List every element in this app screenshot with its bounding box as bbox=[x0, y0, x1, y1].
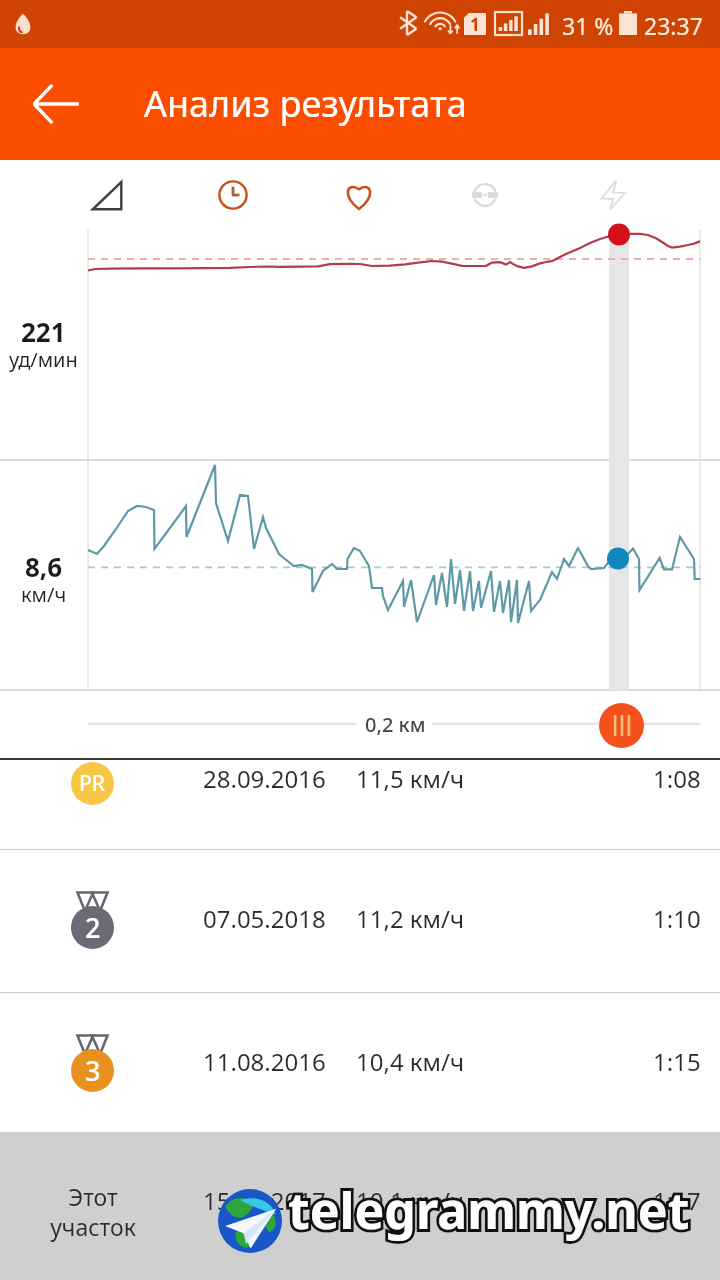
staticText: 221 bbox=[21, 314, 66, 349]
button[interactable]: Heart rate bbox=[296, 160, 422, 230]
staticText: 23:37 bbox=[644, 10, 703, 41]
staticText: Анализ результата bbox=[144, 79, 467, 128]
staticText: 11,5 км/ч bbox=[356, 762, 465, 795]
button[interactable]: Этот участок bbox=[23, 1181, 163, 1251]
staticText: 11,2 км/ч bbox=[356, 902, 465, 935]
staticText: 07.05.2018 bbox=[203, 902, 326, 935]
button[interactable]: Drag handle bbox=[599, 703, 644, 748]
staticText: telegrammy.net bbox=[288, 1176, 690, 1244]
button[interactable]: Elevation profile bbox=[44, 160, 170, 230]
staticText: 31 % bbox=[562, 10, 614, 41]
button[interactable]: Time bbox=[170, 160, 296, 230]
staticText: уд/мин bbox=[9, 346, 78, 373]
button[interactable]: 2 bbox=[0, 849, 720, 992]
staticText: 1:08 bbox=[653, 762, 701, 795]
staticText: км/ч bbox=[21, 581, 67, 608]
staticText: 1:17 bbox=[653, 1184, 701, 1217]
staticText: 10,4 км/ч bbox=[356, 1045, 465, 1078]
staticText: 1:10 bbox=[653, 902, 701, 935]
staticText: 28.09.2016 bbox=[203, 762, 326, 795]
button[interactable]: Power bbox=[548, 160, 674, 230]
staticText: 1 bbox=[470, 13, 480, 35]
button[interactable]: PR bbox=[0, 759, 720, 849]
staticText: Этот участок bbox=[50, 1181, 136, 1242]
button[interactable]: Back bbox=[18, 66, 94, 142]
staticText: 2 bbox=[85, 909, 101, 946]
button[interactable]: Cadence bbox=[422, 160, 548, 230]
button[interactable]: 3 bbox=[0, 992, 720, 1132]
staticText: 10,1 км/ч bbox=[356, 1184, 465, 1217]
staticText: PR bbox=[79, 769, 106, 798]
staticText: 11.08.2016 bbox=[203, 1045, 326, 1078]
staticText: 0,2 км bbox=[365, 711, 426, 738]
staticText: telegrammy.net bbox=[288, 1176, 690, 1244]
staticText: 8,6 bbox=[25, 549, 63, 584]
staticText: 3 bbox=[85, 1052, 101, 1089]
staticText: 1:15 bbox=[653, 1045, 701, 1078]
staticText: 15.09.2017 bbox=[203, 1184, 326, 1217]
